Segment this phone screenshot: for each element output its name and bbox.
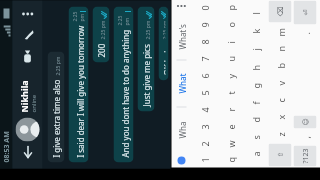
button[interactable]: Voice input	[171, 153, 191, 167]
button[interactable]: Backspace	[268, 0, 291, 22]
staticText: q	[224, 156, 236, 162]
staticText: j	[249, 47, 261, 50]
button[interactable]: d	[243, 112, 266, 127]
button[interactable]: w	[218, 136, 241, 150]
staticText: v	[274, 80, 286, 85]
button[interactable]: Symbols	[293, 145, 316, 166]
staticText: d	[249, 116, 261, 122]
staticText: g	[249, 82, 261, 88]
staticText: 3	[198, 123, 210, 129]
button[interactable]: Video call	[16, 45, 38, 67]
button[interactable]: Emoji	[293, 115, 316, 128]
staticText: h	[249, 64, 261, 70]
staticText: c	[274, 97, 286, 102]
button[interactable]: m	[268, 24, 291, 39]
button[interactable]: y	[218, 68, 241, 83]
staticText: s	[249, 134, 261, 139]
staticText: z	[274, 131, 286, 136]
staticText: 6	[198, 72, 210, 78]
staticText: Just give me pics	[140, 43, 151, 106]
button[interactable]: 7	[192, 51, 216, 66]
staticText: 5	[198, 89, 210, 95]
button[interactable]: v	[268, 75, 291, 90]
staticText: ⏎	[301, 9, 309, 15]
button[interactable]: j	[243, 41, 266, 57]
button[interactable]: s	[243, 129, 266, 144]
button[interactable]: 9	[192, 17, 216, 32]
button[interactable]: 2	[192, 136, 216, 150]
button[interactable]: g	[243, 77, 266, 93]
staticText: i	[224, 40, 236, 43]
button[interactable]: e	[218, 119, 241, 134]
button[interactable]: x	[268, 109, 291, 124]
staticText: o	[224, 21, 236, 27]
staticText: 2:25 pm	[54, 56, 61, 75]
staticText: a	[249, 150, 261, 156]
button[interactable]: q	[218, 152, 241, 166]
staticText: 4	[198, 106, 210, 112]
button[interactable]: I give extra time also	[47, 51, 64, 162]
button[interactable]: u	[218, 51, 241, 66]
staticText: 200	[95, 43, 106, 57]
staticText: 8	[198, 38, 210, 44]
staticText: ☺	[301, 117, 309, 125]
staticText: x	[274, 114, 286, 119]
staticText: 2:25 pm	[144, 20, 151, 39]
button[interactable]: 5	[192, 85, 216, 100]
button[interactable]: What	[171, 60, 191, 106]
button[interactable]: .	[293, 26, 316, 39]
staticText: 2	[198, 140, 210, 146]
button[interactable]: 200	[92, 6, 109, 62]
button[interactable]: i	[218, 34, 241, 49]
button[interactable]: p	[218, 0, 241, 15]
button[interactable]: 6	[192, 68, 216, 83]
staticText: Wha	[176, 121, 187, 138]
button[interactable]: t	[218, 85, 241, 100]
button[interactable]: 0	[192, 0, 216, 15]
button[interactable]: More suggestions	[171, 0, 191, 13]
button[interactable]: k	[243, 23, 266, 39]
staticText: 08:53 AM	[1, 130, 11, 162]
staticText: 7	[198, 55, 210, 61]
button[interactable]: l	[243, 5, 266, 21]
staticText: t	[224, 90, 236, 94]
staticText: l	[249, 11, 261, 14]
button[interactable]: What's	[171, 13, 191, 59]
button[interactable]: 3	[192, 119, 216, 134]
button[interactable]: Back	[16, 141, 38, 163]
button[interactable]: 1	[192, 152, 216, 166]
staticText: y	[224, 73, 236, 78]
button[interactable]: Just give me pics	[137, 6, 154, 111]
button[interactable]: h	[243, 59, 266, 75]
button[interactable]: n	[268, 41, 291, 56]
button[interactable]: 4	[192, 102, 216, 117]
staticText: 0	[198, 4, 210, 10]
button[interactable]: z	[268, 126, 291, 141]
button[interactable]: 8	[192, 34, 216, 49]
staticText: And you dont have to do anything	[119, 29, 130, 157]
button[interactable]: Voice call	[16, 23, 38, 45]
button[interactable]: OK baby	[158, 6, 168, 80]
button[interactable]: I said dear I will give you tomorrow	[68, 6, 88, 162]
button[interactable]: Shift	[268, 143, 291, 166]
staticText: n	[274, 45, 286, 51]
button[interactable]: o	[218, 17, 241, 32]
button[interactable]: Wha	[171, 107, 191, 153]
button[interactable]: c	[268, 92, 291, 107]
button[interactable]: r	[218, 102, 241, 117]
button[interactable]: Contact photo	[15, 117, 39, 141]
button[interactable]: b	[268, 58, 291, 73]
staticText: b	[274, 62, 286, 68]
button[interactable]: f	[243, 95, 266, 110]
button[interactable]: Enter	[293, 0, 316, 24]
staticText: u	[224, 55, 236, 61]
button[interactable]: ,	[293, 130, 316, 143]
button[interactable]: And you dont have to do anything	[113, 6, 133, 162]
staticText: Nikhila	[17, 79, 29, 112]
staticText: I said dear I will give you tomorrow	[74, 25, 85, 157]
button[interactable]: a	[243, 146, 266, 161]
button[interactable]: Nikhila	[17, 67, 37, 112]
button[interactable]: More options	[18, 5, 36, 23]
staticText: 9	[198, 21, 210, 27]
